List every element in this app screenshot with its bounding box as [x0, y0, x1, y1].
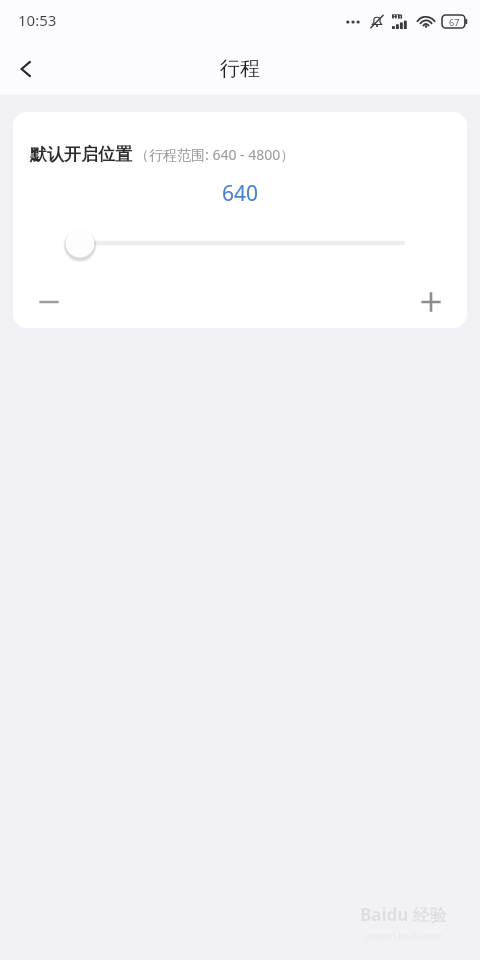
- staticText: Baidu 经验: [360, 903, 447, 926]
- button[interactable]: Decrease: [23, 282, 75, 322]
- button[interactable]: Increase: [405, 282, 457, 322]
- staticText: 默认开启位置: [30, 144, 132, 165]
- staticText: 640: [13, 179, 467, 208]
- staticText: （行程范围: 640 - 4800）: [135, 145, 295, 164]
- staticText: 67: [449, 16, 460, 28]
- button[interactable]: Back: [2, 45, 50, 93]
- button[interactable]: Travel position slider: [13, 226, 467, 260]
- staticText: 10:53: [18, 10, 57, 30]
- staticText: 行程: [220, 56, 260, 81]
